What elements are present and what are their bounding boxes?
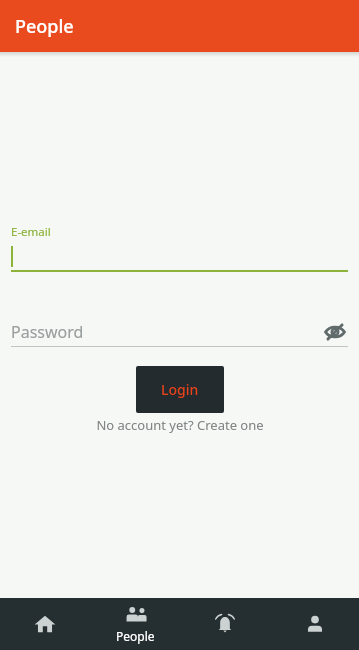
button[interactable]: Profile	[270, 598, 359, 650]
staticText: E-email	[11, 224, 51, 240]
staticText: Login	[161, 380, 199, 399]
button[interactable]: Notifications	[180, 598, 270, 650]
button[interactable]: People	[90, 598, 180, 650]
button[interactable]: No account yet? Create one	[90, 415, 270, 435]
button[interactable]: Login	[136, 366, 224, 413]
button[interactable]: Show password	[322, 319, 348, 345]
staticText: People	[15, 14, 74, 39]
button[interactable]: Home	[0, 598, 90, 650]
staticText: No account yet? Create one	[96, 416, 264, 434]
staticText: People	[116, 628, 155, 644]
staticText: Password	[11, 321, 84, 343]
